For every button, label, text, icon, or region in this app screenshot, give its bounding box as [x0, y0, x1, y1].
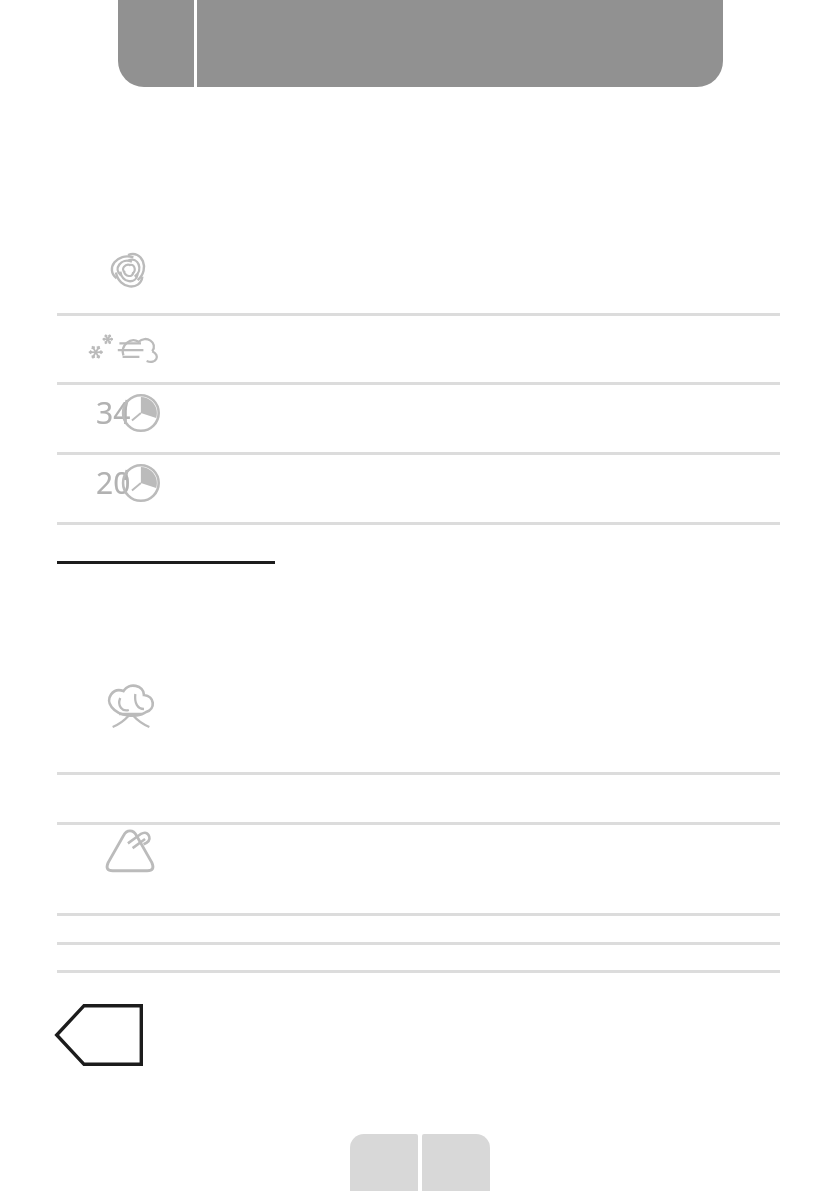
button[interactable]: Title bar [197, 0, 723, 87]
staticText: 20 [96, 462, 131, 503]
button[interactable]: 34 minutes [57, 385, 780, 452]
button[interactable]: Row [57, 914, 780, 942]
button[interactable]: Underlined field [57, 538, 275, 564]
button[interactable]: Snow and wind [57, 316, 780, 382]
button[interactable]: Warning [57, 825, 780, 913]
button[interactable]: Row [57, 943, 780, 970]
button[interactable]: Right tile [422, 1134, 490, 1191]
button[interactable]: Left tile [350, 1134, 418, 1191]
staticText: 34 [96, 392, 131, 433]
button[interactable]: Navigation [118, 0, 194, 87]
button[interactable]: 20 minutes [57, 455, 780, 522]
button[interactable]: Vortex [57, 240, 780, 313]
button[interactable]: Empty row [57, 773, 780, 822]
button[interactable]: Back [55, 1004, 143, 1066]
button[interactable]: Cotton [57, 672, 780, 772]
